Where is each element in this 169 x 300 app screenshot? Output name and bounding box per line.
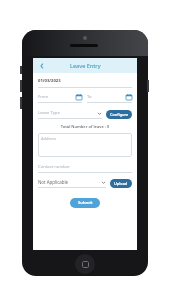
staticText: Contact number <box>38 164 70 170</box>
staticText: From <box>38 94 76 100</box>
button[interactable]: Contact number <box>38 164 132 173</box>
staticText: Upload <box>114 181 128 186</box>
staticText: 01/03/2023 <box>38 78 61 84</box>
button[interactable]: Leave Type <box>38 110 102 119</box>
staticText: Not Applicable <box>38 179 101 185</box>
staticText: Leave Entry <box>70 62 101 69</box>
button[interactable]: To <box>87 94 132 103</box>
staticText: Leave Type <box>38 110 97 116</box>
button[interactable]: Address <box>38 133 132 157</box>
other: Pick date <box>76 94 82 100</box>
button[interactable]: From <box>38 94 82 103</box>
staticText: Submit <box>78 200 93 206</box>
staticText: To <box>87 94 126 100</box>
button[interactable]: Submit <box>70 198 100 208</box>
button[interactable]: Not Applicable <box>38 179 106 188</box>
staticText: Address <box>41 136 57 141</box>
button[interactable]: 01/03/2023 <box>38 78 132 88</box>
button[interactable]: Configure <box>106 110 132 119</box>
button[interactable]: Upload <box>110 179 132 188</box>
other: Pick date <box>126 94 132 100</box>
staticText: Configure <box>110 112 129 117</box>
button[interactable]: Back <box>36 60 47 71</box>
staticText: Total Number of leave : 0 <box>38 124 132 129</box>
